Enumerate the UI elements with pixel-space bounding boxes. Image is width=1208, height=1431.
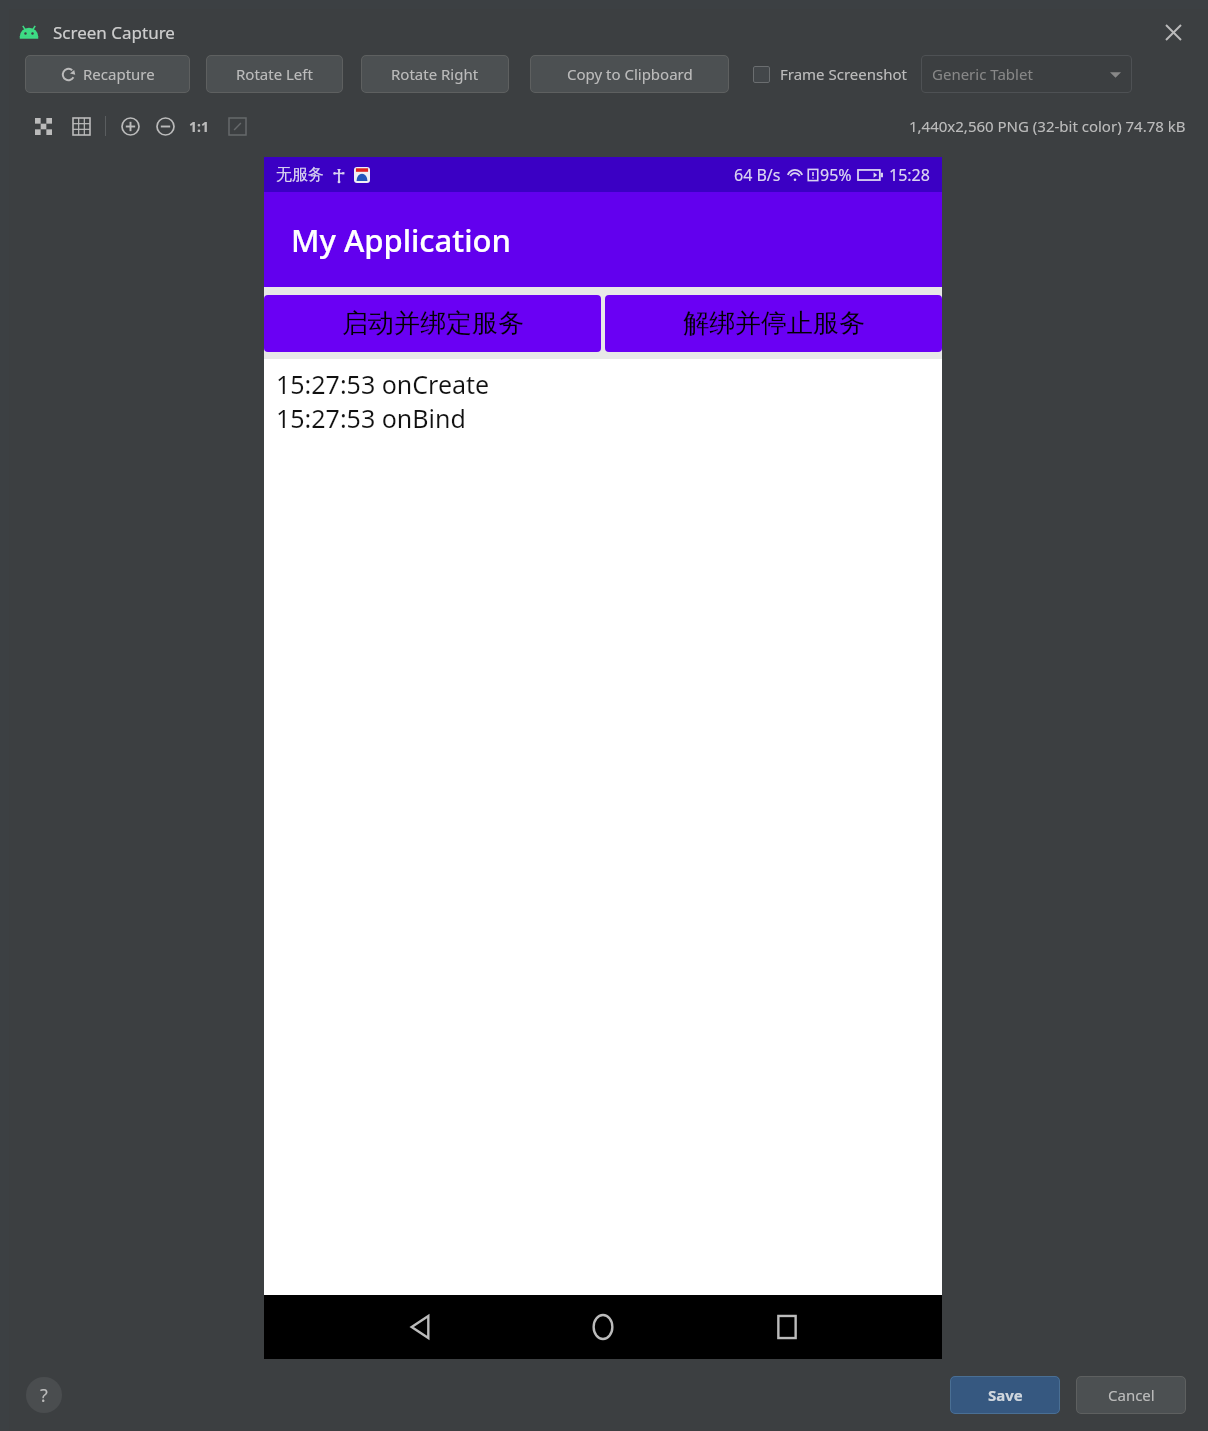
button[interactable]: Back	[392, 1299, 448, 1355]
button[interactable]: Generic Tablet	[921, 55, 1132, 93]
staticText: Screen Capture	[53, 21, 175, 44]
staticText: Save	[988, 1385, 1023, 1405]
button[interactable]: 启动并绑定服务	[264, 295, 601, 352]
button[interactable]: 解绑并停止服务	[605, 295, 942, 352]
staticText: Recapture	[83, 64, 155, 84]
staticText: Copy to Clipboard	[567, 64, 693, 84]
staticText: ?	[40, 1383, 48, 1408]
button[interactable]: Actual size	[186, 117, 212, 136]
button[interactable]: Grid	[68, 113, 94, 139]
staticText: 1,440x2,560 PNG (32-bit color) 74.78 kB	[909, 116, 1186, 136]
button[interactable]: Copy to Clipboard	[530, 55, 729, 93]
staticText: Cancel	[1108, 1385, 1155, 1405]
button[interactable]: Recents	[759, 1299, 815, 1355]
button[interactable]: Save	[950, 1376, 1060, 1414]
button[interactable]: Recapture	[25, 55, 190, 93]
button[interactable]: Fit to window	[224, 113, 250, 139]
staticText: Frame Screenshot	[780, 64, 907, 84]
button[interactable]: Zoom in	[117, 113, 143, 139]
staticText: Rotate Right	[391, 64, 479, 84]
button[interactable]: Help	[26, 1377, 62, 1413]
staticText: Generic Tablet	[932, 64, 1110, 84]
button[interactable]: Frame Screenshot	[753, 64, 907, 84]
staticText: 1:1	[189, 117, 209, 136]
staticText: Rotate Left	[236, 64, 313, 84]
button[interactable]: Rotate Right	[361, 55, 509, 93]
button[interactable]: Cancel	[1076, 1376, 1186, 1414]
staticText: 15:27:53 onCreate	[276, 367, 490, 401]
button[interactable]: Close	[1160, 19, 1186, 45]
button[interactable]: Transparency	[30, 113, 56, 139]
staticText: 启动并绑定服务	[342, 307, 524, 340]
button[interactable]: Rotate Left	[206, 55, 343, 93]
staticText: 95%	[820, 164, 852, 186]
staticText: 15:28	[889, 164, 930, 186]
staticText: 64 B/s	[734, 164, 781, 186]
button[interactable]: Home	[575, 1299, 631, 1355]
staticText: My Application	[291, 219, 511, 261]
staticText: 无服务	[276, 165, 324, 185]
staticText: 解绑并停止服务	[683, 307, 865, 340]
button[interactable]: Zoom out	[152, 113, 178, 139]
staticText: 15:27:53 onBind	[276, 401, 466, 435]
